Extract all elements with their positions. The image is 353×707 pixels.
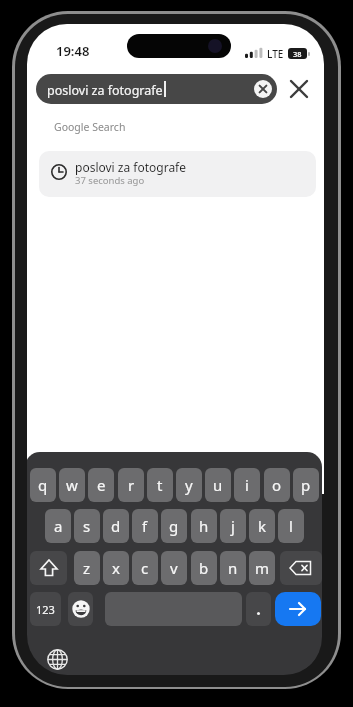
staticText: w [66, 475, 78, 495]
button[interactable]: b [191, 551, 217, 585]
button[interactable] [30, 551, 67, 585]
staticText: 123 [36, 602, 55, 617]
button[interactable]: p [293, 468, 319, 502]
button[interactable]: t [147, 468, 173, 502]
staticText: b [199, 558, 209, 578]
staticText: m [255, 558, 270, 578]
button[interactable]: f [132, 509, 158, 543]
staticText: LTE [267, 47, 284, 61]
button[interactable]: q [30, 468, 56, 502]
staticText: 38 [293, 49, 302, 59]
button[interactable]: l [278, 509, 304, 543]
staticText: n [228, 558, 238, 578]
button[interactable]: 123 [30, 592, 61, 626]
button[interactable]: d [103, 509, 129, 543]
staticText: 37 seconds ago [75, 174, 145, 187]
staticText: Google Search [54, 120, 126, 134]
staticText: k [258, 516, 267, 536]
staticText: x [112, 558, 120, 578]
staticText: g [169, 516, 179, 536]
staticText: c [141, 558, 149, 578]
staticText: a [54, 516, 63, 536]
staticText: q [38, 475, 48, 495]
button[interactable] [275, 592, 321, 626]
button[interactable] [68, 592, 93, 626]
staticText: l [289, 516, 293, 536]
staticText: o [272, 475, 282, 495]
button[interactable]: m [249, 551, 275, 585]
staticText: d [111, 516, 121, 536]
button[interactable] [254, 80, 272, 98]
button[interactable]: poslovi za fotografe [39, 151, 316, 197]
staticText: u [213, 475, 223, 495]
button[interactable]: r [118, 468, 144, 502]
button[interactable]: x [103, 551, 129, 585]
button[interactable]: s [74, 509, 100, 543]
button[interactable]: z [74, 551, 100, 585]
button[interactable]: j [220, 509, 246, 543]
button[interactable] [41, 643, 74, 675]
button[interactable]: i [234, 468, 260, 502]
button[interactable]: poslovi za fotografe [36, 74, 277, 104]
staticText: v [170, 558, 178, 578]
button[interactable] [280, 551, 322, 585]
staticText: t [157, 475, 163, 495]
staticText: poslovi za fotografe [75, 159, 187, 175]
button[interactable]: a [45, 509, 71, 543]
staticText: j [231, 516, 235, 536]
staticText: z [83, 558, 91, 578]
button[interactable]: y [176, 468, 202, 502]
button[interactable] [246, 592, 271, 626]
staticText: i [245, 475, 249, 495]
button[interactable]: n [220, 551, 246, 585]
button[interactable] [281, 71, 317, 107]
staticText: y [185, 475, 193, 495]
button[interactable]: k [249, 509, 275, 543]
button[interactable]: e [88, 468, 114, 502]
button[interactable]: c [132, 551, 158, 585]
staticText: p [301, 475, 311, 495]
button[interactable]: w [59, 468, 85, 502]
staticText: r [128, 475, 135, 495]
button[interactable]: g [161, 509, 187, 543]
staticText: f [142, 516, 148, 536]
button[interactable]: h [191, 509, 217, 543]
staticText: e [97, 475, 106, 495]
button[interactable]: v [161, 551, 187, 585]
staticText: poslovi za fotografe [47, 82, 163, 99]
staticText: 19:48 [56, 42, 90, 60]
button[interactable]: u [205, 468, 231, 502]
staticText: s [83, 516, 91, 536]
button[interactable]: o [264, 468, 290, 502]
staticText: h [199, 516, 209, 536]
